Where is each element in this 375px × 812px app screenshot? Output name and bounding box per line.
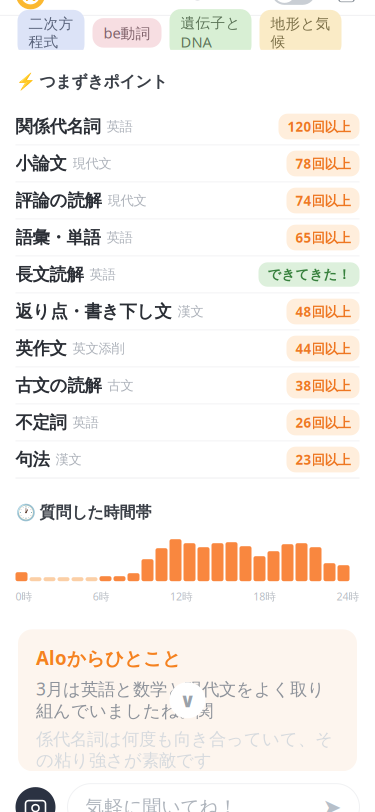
staticText: 英語 [72, 414, 98, 431]
button[interactable]: 小論文 [0, 145, 375, 181]
button[interactable]: 語彙・単語 [0, 219, 375, 255]
staticText: 関係代名詞 [15, 116, 100, 137]
staticText: 英語 [106, 229, 132, 246]
staticText: 26回以上 [295, 414, 350, 431]
button[interactable]: ヒント [189, 0, 315, 5]
staticText: 英作文 [15, 338, 66, 359]
button[interactable]: 気軽に聞いてね！ [67, 784, 359, 812]
staticText: つまずきポイント [39, 72, 167, 92]
button[interactable]: 二次方程式 [17, 10, 84, 56]
staticText: be動詞 [103, 23, 150, 43]
staticText: 120回以上 [287, 118, 350, 135]
staticText: 3月は英語と数学と現代文をよく取り組んでいましたね。関 [36, 677, 325, 721]
staticText: 23回以上 [295, 451, 350, 468]
staticText: 現代文 [72, 155, 111, 172]
staticText: 古文 [107, 377, 133, 394]
staticText: 漢文 [177, 303, 203, 320]
staticText: 18時 [253, 589, 276, 603]
staticText: 地形と気候 [270, 15, 330, 51]
staticText: 気軽に聞いてね！ [85, 796, 237, 812]
staticText: ∨ [179, 689, 195, 712]
staticText: 74回以上 [295, 192, 350, 209]
staticText: 漢文 [55, 451, 81, 468]
button[interactable]: Home [15, 0, 45, 10]
staticText: 英語 [89, 266, 115, 283]
staticText: できてきた！ [267, 266, 350, 283]
staticText: ? [194, 0, 201, 2]
staticText: 英語 [106, 118, 132, 135]
staticText: 不定詞 [15, 412, 66, 433]
button[interactable]: 評論の読解 [0, 182, 375, 218]
staticText: ➤ [322, 794, 341, 812]
staticText: 遺伝子とDNA [180, 14, 240, 52]
staticText: 65回以上 [295, 229, 350, 246]
button[interactable]: 遺伝子とDNA [169, 9, 251, 57]
staticText: 二次方程式 [28, 15, 73, 51]
staticText: 38回以上 [295, 377, 350, 394]
staticText: Aloからひとこと [36, 645, 181, 670]
button[interactable]: 不定詞 [0, 404, 375, 440]
staticText: 返り点・書き下し文 [15, 301, 171, 322]
button[interactable]: 句法 [0, 441, 375, 477]
button[interactable]: 長文読解 [0, 256, 375, 292]
staticText: 24時 [336, 589, 359, 603]
button[interactable]: Scroll down [169, 682, 205, 718]
staticText: 語彙・単語 [15, 227, 100, 248]
staticText: 6時 [93, 589, 110, 603]
staticText: ⚡️ [15, 73, 35, 91]
button[interactable]: Camera [15, 787, 55, 812]
staticText: 12時 [170, 589, 193, 603]
staticText: A [25, 0, 35, 5]
button[interactable]: 古文の読解 [0, 367, 375, 403]
button[interactable]: Bookmark [333, 0, 359, 5]
button[interactable]: be動詞 [92, 18, 161, 48]
button[interactable]: 関係代名詞 [0, 108, 375, 144]
button[interactable]: 英作文 [0, 330, 375, 366]
staticText: 古文の読解 [15, 375, 101, 396]
staticText: 係代名詞は何度も向き合っていて、その粘り強さが素敵です [36, 728, 333, 771]
staticText: 現代文 [107, 192, 146, 209]
button[interactable]: 返り点・書き下し文 [0, 293, 375, 329]
staticText: 44回以上 [295, 340, 350, 357]
staticText: 78回以上 [295, 155, 350, 172]
staticText: ∨ [341, 0, 352, 2]
staticText: 句法 [15, 449, 49, 470]
staticText: 評論の読解 [15, 190, 101, 211]
button[interactable]: 地形と気候 [259, 10, 341, 56]
staticText: 小論文 [15, 153, 66, 174]
staticText: 英文添削 [72, 340, 124, 357]
staticText: 🕐 [15, 503, 35, 521]
staticText: 長文読解 [15, 264, 83, 285]
staticText: 0時 [15, 589, 32, 603]
staticText: 48回以上 [295, 303, 350, 320]
staticText: 質問した時間帯 [39, 502, 151, 522]
